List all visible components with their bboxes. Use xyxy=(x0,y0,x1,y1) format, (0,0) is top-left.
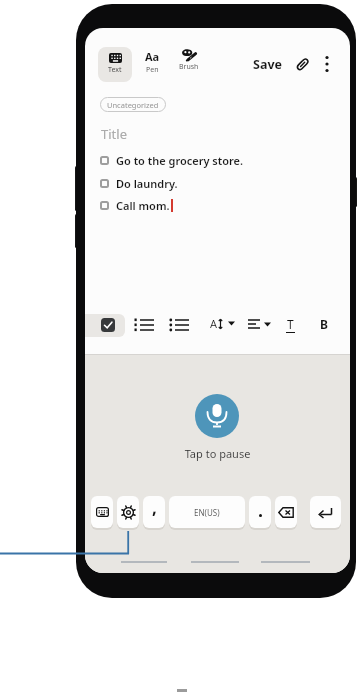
button[interactable] xyxy=(91,496,113,528)
staticText: Uncategorized xyxy=(107,100,159,110)
staticText: A xyxy=(210,316,218,331)
staticText: T xyxy=(287,316,294,332)
button[interactable] xyxy=(248,318,271,330)
button[interactable]: Do laundry. xyxy=(100,175,178,191)
staticText: , xyxy=(152,496,157,519)
button[interactable] xyxy=(249,496,271,528)
button[interactable] xyxy=(134,318,155,332)
staticText: Tap to pause xyxy=(85,446,350,461)
button[interactable] xyxy=(85,314,125,337)
staticText: Brush xyxy=(179,62,199,72)
button[interactable]: Aa xyxy=(137,49,167,75)
staticText: Go to the grocery store. xyxy=(116,153,244,168)
staticText: Pen xyxy=(146,65,159,75)
button[interactable]: Uncategorized xyxy=(100,97,166,112)
button[interactable]: EN(US) xyxy=(169,496,245,528)
button[interactable] xyxy=(169,318,190,332)
staticText: Title xyxy=(101,125,127,143)
staticText: EN(US) xyxy=(194,507,220,518)
button[interactable] xyxy=(310,496,341,528)
button[interactable]: Call mom. xyxy=(100,197,173,213)
staticText: Aa xyxy=(145,49,160,64)
button[interactable] xyxy=(101,318,115,332)
staticText: Text xyxy=(108,65,122,75)
button[interactable] xyxy=(323,55,331,73)
button[interactable]: Go to the grocery store. xyxy=(100,152,244,168)
button[interactable]: T xyxy=(284,316,296,333)
button[interactable] xyxy=(275,496,297,528)
button[interactable] xyxy=(117,496,139,528)
staticText: Call mom. xyxy=(116,198,170,213)
button[interactable] xyxy=(295,57,310,72)
button[interactable]: , xyxy=(143,496,165,528)
button[interactable]: A xyxy=(210,316,235,331)
button[interactable]: B xyxy=(320,316,328,332)
staticText: Do laundry. xyxy=(116,176,178,191)
button[interactable]: Save xyxy=(253,56,282,73)
button[interactable]: Brush xyxy=(174,49,204,72)
button[interactable]: Text xyxy=(98,47,132,82)
button[interactable] xyxy=(195,394,239,438)
